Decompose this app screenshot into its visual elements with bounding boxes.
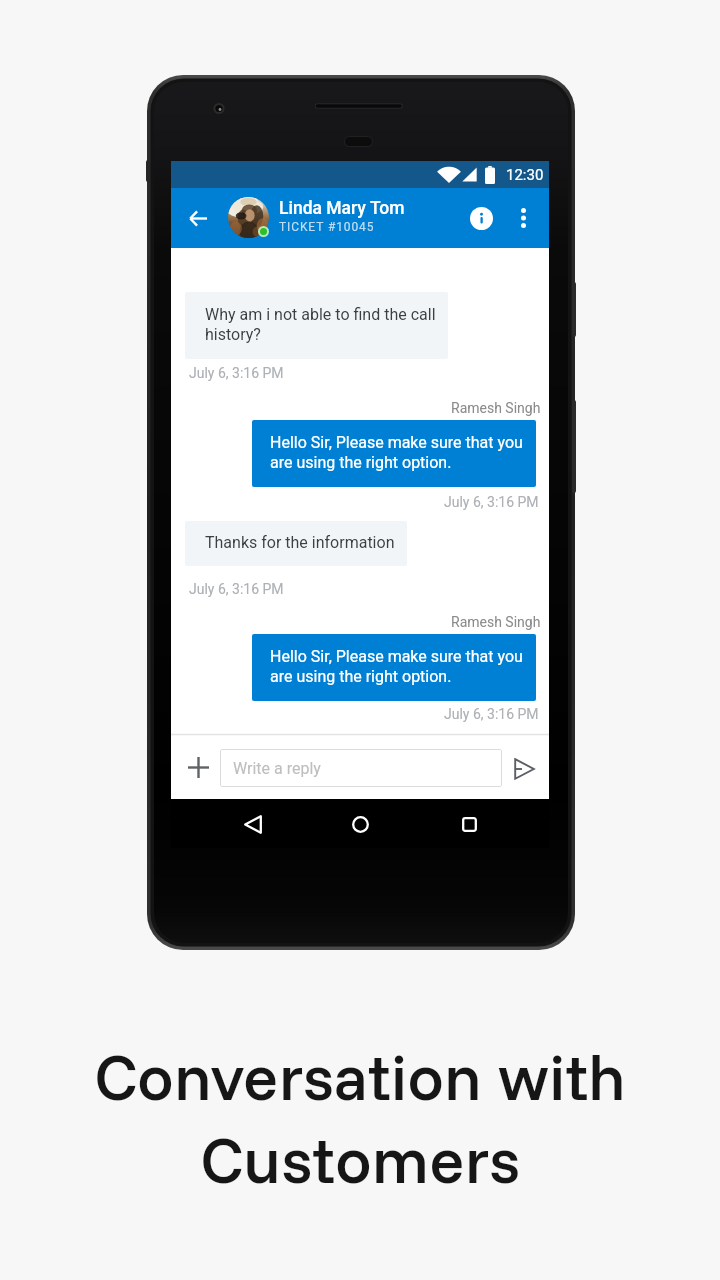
staticText: Hello Sir, Please make sure that you are… <box>270 433 531 472</box>
button[interactable]: Thanks for the information <box>185 521 407 566</box>
staticText: Linda Mary Tom <box>279 198 405 219</box>
button[interactable]: Home <box>338 802 382 846</box>
staticText: Write a reply <box>233 759 321 778</box>
staticText: Hello Sir, Please make sure that you are… <box>270 647 531 686</box>
button[interactable]: Write a reply <box>220 749 502 787</box>
staticText: Ramesh Singh <box>451 614 541 630</box>
staticText: TICKET #10045 <box>279 220 375 234</box>
button[interactable]: Send <box>500 745 548 793</box>
button[interactable]: Hello Sir, Please make sure that you are… <box>252 420 536 487</box>
button[interactable]: More options <box>505 200 541 236</box>
staticText: Customers <box>0 1118 720 1199</box>
staticText: 12:30 <box>506 166 544 184</box>
button[interactable]: Why am i not able to find the call histo… <box>185 292 448 359</box>
staticText: Conversation with <box>0 1035 720 1116</box>
staticText: July 6, 3:16 PM <box>189 365 284 381</box>
staticText: Why am i not able to find the call histo… <box>205 305 442 344</box>
staticText: July 6, 3:16 PM <box>444 494 539 510</box>
button[interactable]: Hello Sir, Please make sure that you are… <box>252 634 536 701</box>
staticText: July 6, 3:16 PM <box>189 581 284 597</box>
button[interactable]: Add attachment <box>174 743 222 791</box>
button[interactable]: Conversation info <box>459 196 503 240</box>
staticText: Thanks for the information <box>205 533 395 552</box>
button[interactable]: Back <box>176 196 220 240</box>
staticText: July 6, 3:16 PM <box>444 706 539 722</box>
button[interactable]: Recent apps <box>447 802 491 846</box>
button[interactable]: Back <box>231 802 275 846</box>
staticText: Ramesh Singh <box>451 400 541 416</box>
